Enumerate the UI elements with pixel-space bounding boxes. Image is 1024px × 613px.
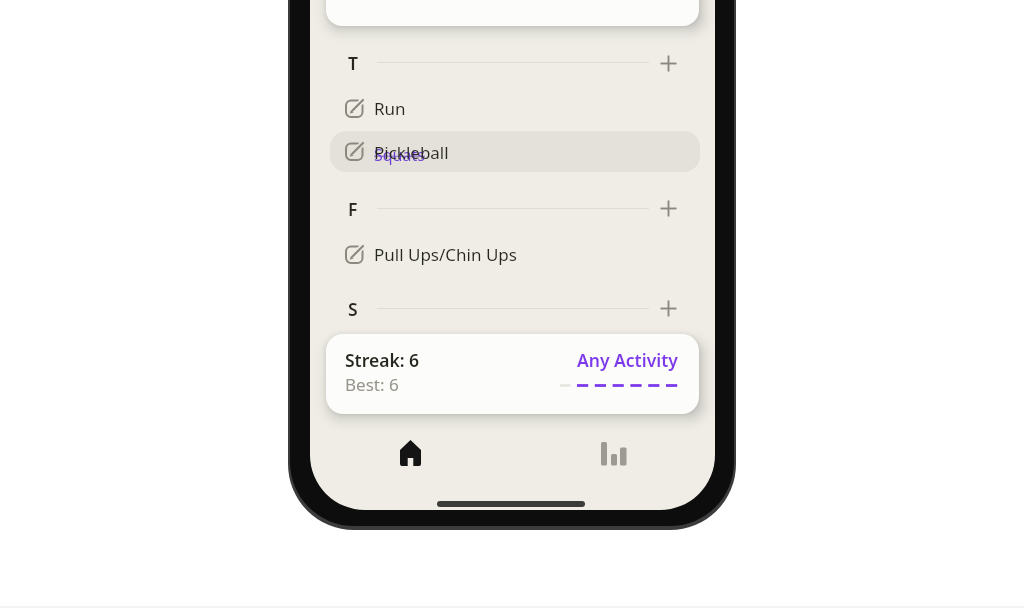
button[interactable]: [660, 200, 677, 217]
staticText: Run: [374, 97, 406, 120]
staticText: Pull Ups/Chin Ups: [374, 243, 517, 266]
button[interactable]: Any Activity: [560, 348, 678, 368]
button[interactable]: [332, 90, 700, 127]
button[interactable]: [583, 432, 645, 474]
staticText: Best: 6: [345, 373, 399, 393]
button[interactable]: Pull Ups/Chin Ups: [374, 243, 517, 266]
button[interactable]: [326, 334, 699, 414]
staticText: T: [348, 51, 358, 75]
button[interactable]: [660, 300, 677, 317]
button[interactable]: [660, 55, 677, 72]
staticText: Any Activity: [577, 348, 678, 368]
staticText: Pickleball: [374, 141, 449, 164]
staticText: Streak: 6: [345, 348, 420, 368]
staticText: S: [348, 297, 358, 321]
staticText: F: [348, 197, 358, 221]
button[interactable]: [330, 131, 700, 172]
button[interactable]: [380, 432, 442, 474]
staticText: Squats: [374, 144, 425, 166]
